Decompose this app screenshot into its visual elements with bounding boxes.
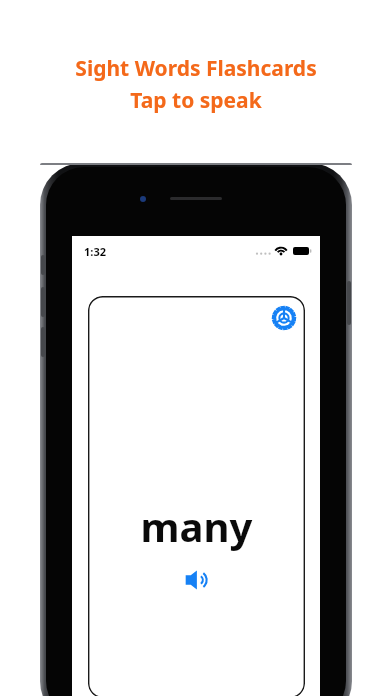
staticText: Tap to speak <box>130 86 262 115</box>
staticText: Sight Words Flashcards <box>75 54 317 83</box>
button[interactable]: Speak word <box>184 568 212 592</box>
staticText: many <box>88 499 305 553</box>
staticText: 1:32 <box>84 244 106 259</box>
button[interactable]: Settings <box>88 296 305 696</box>
button[interactable]: Settings <box>272 306 296 330</box>
